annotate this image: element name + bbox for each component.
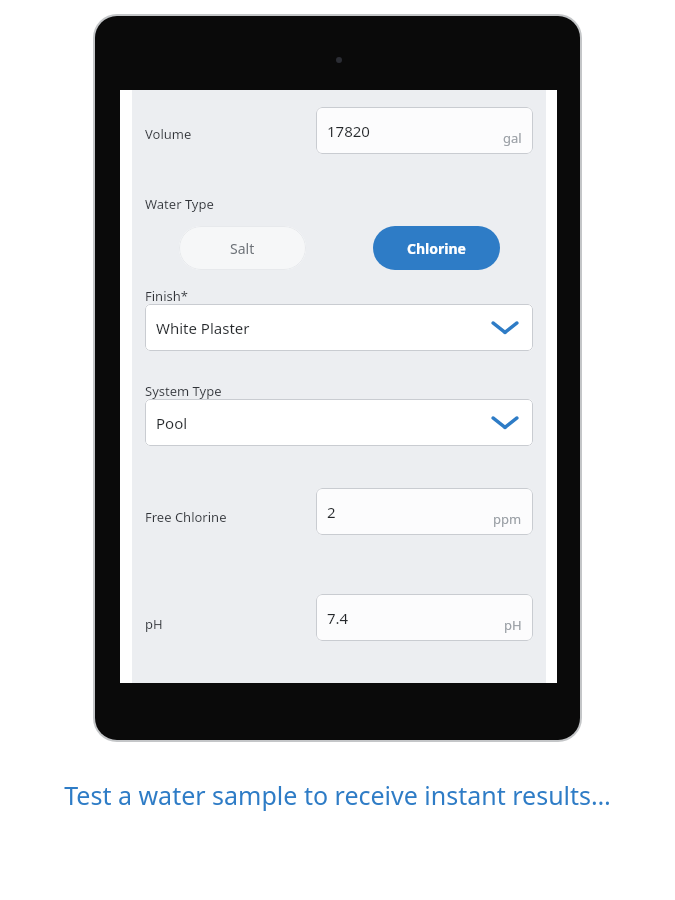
staticText: ppm (493, 510, 522, 528)
staticText: Free Chlorine (145, 508, 227, 526)
button[interactable]: 7.4 (316, 594, 533, 641)
staticText: Pool (156, 413, 188, 433)
staticText: Salt (230, 239, 255, 258)
staticText: 17820 (327, 121, 370, 141)
staticText: Chlorine (407, 239, 466, 258)
staticText: White Plaster (156, 318, 250, 338)
staticText: 7.4 (327, 608, 349, 628)
staticText: Finish* (145, 287, 188, 305)
staticText: 2 (327, 502, 336, 522)
button[interactable]: Select Pool (145, 399, 533, 446)
button[interactable]: 2 (316, 488, 533, 535)
staticText: System Type (145, 382, 222, 400)
button[interactable]: 17820 (316, 107, 533, 154)
staticText: pH (504, 616, 522, 634)
staticText: gal (503, 129, 522, 147)
staticText: Water Type (145, 195, 214, 213)
staticText: pH (145, 615, 163, 633)
staticText: Volume (145, 125, 192, 143)
staticText: Test a water sample to receive instant r… (50, 778, 625, 812)
button[interactable]: Salt (179, 226, 306, 270)
button[interactable]: Select White Plaster (145, 304, 533, 351)
button[interactable]: Chlorine (373, 226, 500, 270)
